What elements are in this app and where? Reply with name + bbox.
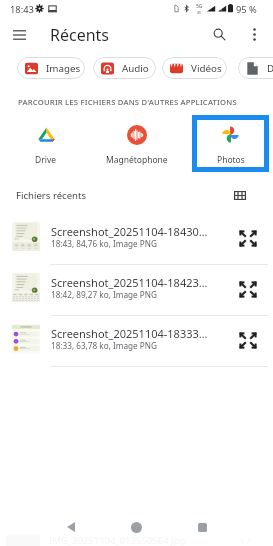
button[interactable]: More options bbox=[243, 23, 266, 46]
button[interactable]: Recent apps bbox=[187, 512, 217, 542]
staticText: Screenshot_20251104-18333… bbox=[51, 326, 209, 341]
button[interactable]: Drive bbox=[12, 113, 80, 168]
button[interactable]: Expand bbox=[234, 275, 262, 303]
button[interactable]: Documents bbox=[238, 57, 273, 79]
button[interactable]: Screenshot_20251104-18423… bbox=[0, 265, 273, 316]
staticText: PARCOURIR LES FICHIERS DANS D'AUTRES APP… bbox=[18, 97, 237, 107]
button[interactable]: Search bbox=[208, 23, 231, 46]
staticText: 45 bbox=[197, 10, 202, 15]
staticText: Screenshot_20251104-18423… bbox=[51, 275, 209, 290]
button[interactable]: Magnétophone bbox=[94, 113, 180, 168]
button[interactable]: Screenshot_20251104-18430… bbox=[0, 214, 273, 265]
button[interactable]: Vidéos bbox=[162, 57, 227, 79]
button[interactable]: Back bbox=[56, 512, 86, 542]
staticText: IMG_20251104_012550564.jpg bbox=[49, 534, 186, 546]
staticText: Documents bbox=[267, 62, 273, 75]
staticText: Récents bbox=[50, 24, 110, 46]
button[interactable]: Switch to grid view bbox=[230, 182, 250, 208]
button[interactable]: Navigation menu bbox=[8, 24, 30, 46]
button[interactable]: Screenshot_20251104-18333… bbox=[0, 316, 273, 367]
button[interactable]: Expand bbox=[234, 224, 262, 252]
staticText: Magnétophone bbox=[106, 154, 168, 166]
staticText: 18:43, 84,76 ko, Image PNG bbox=[51, 238, 157, 249]
button[interactable]: Home bbox=[121, 512, 151, 542]
staticText: Images bbox=[46, 62, 81, 75]
button[interactable]: Photos bbox=[192, 115, 269, 172]
staticText: Screenshot_20251104-18430… bbox=[51, 224, 209, 239]
button[interactable]: Expand bbox=[234, 326, 262, 354]
staticText: Fichiers récents bbox=[16, 189, 87, 202]
staticText: Drive bbox=[35, 154, 57, 166]
staticText: Audio bbox=[122, 62, 149, 75]
staticText: 5G bbox=[196, 3, 203, 10]
staticText: Photos bbox=[217, 154, 245, 166]
button[interactable]: Images bbox=[17, 57, 85, 79]
staticText: 95 % bbox=[236, 3, 257, 16]
button[interactable]: Audio bbox=[93, 57, 156, 79]
staticText: 18:42, 89,27 ko, Image PNG bbox=[51, 289, 157, 300]
staticText: Vidéos bbox=[191, 62, 222, 75]
staticText: 18:33, 63,78 ko, Image PNG bbox=[51, 340, 157, 351]
staticText: 18:43 bbox=[10, 3, 34, 16]
